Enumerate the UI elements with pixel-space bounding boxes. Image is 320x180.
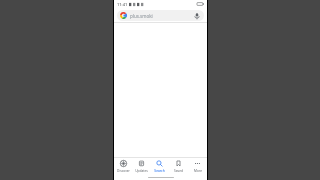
staticText: plus.smoki: [130, 13, 153, 19]
staticText: More: [194, 169, 202, 173]
button[interactable]: Saved: [169, 158, 188, 175]
button[interactable]: Updates: [132, 158, 150, 175]
button[interactable]: plus.smoki: [117, 10, 204, 21]
staticText: Discover: [117, 169, 130, 173]
staticText: Saved: [174, 169, 183, 173]
button[interactable]: Discover: [114, 158, 132, 175]
button[interactable]: Search: [150, 158, 169, 175]
staticText: Updates: [135, 169, 148, 173]
staticText: 11:41: [117, 2, 128, 7]
button[interactable]: More: [188, 158, 207, 175]
button[interactable]: Voice search: [192, 11, 201, 20]
staticText: Search: [154, 169, 165, 173]
